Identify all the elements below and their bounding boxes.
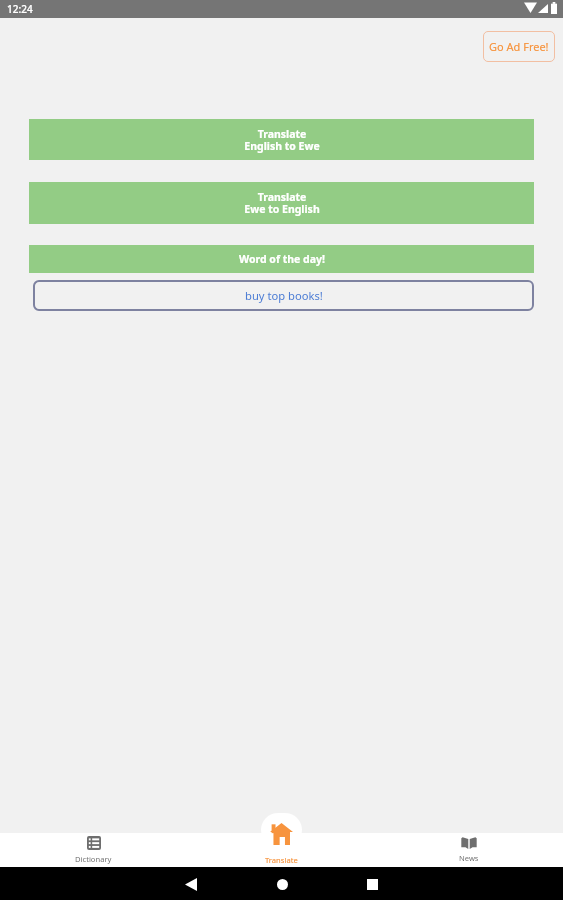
button[interactable]: News [375, 833, 563, 867]
staticText: Translate Ewe to English [244, 190, 320, 216]
staticText: 12:24 [7, 2, 33, 16]
button[interactable]: Back [176, 869, 206, 899]
staticText: News [459, 853, 479, 863]
button[interactable]: Home [267, 869, 297, 899]
button[interactable]: Recent apps [357, 869, 387, 899]
staticText: Go Ad Free! [489, 39, 549, 54]
button[interactable]: Dictionary [0, 833, 187, 867]
button[interactable]: Translate Ewe to English [29, 182, 534, 224]
button[interactable]: buy top books! [33, 280, 534, 311]
button[interactable]: Go Ad Free! [483, 31, 555, 62]
staticText: Dictionary [75, 854, 112, 864]
button[interactable]: Translate [261, 813, 302, 847]
staticText: buy top books! [245, 288, 323, 303]
staticText: Translate [265, 855, 298, 865]
button[interactable]: Word of the day! [29, 245, 534, 273]
staticText: Word of the day! [239, 252, 325, 266]
button[interactable]: Translate English to Ewe [29, 119, 534, 160]
button[interactable]: Translate [187, 833, 375, 867]
staticText: Translate English to Ewe [244, 127, 320, 153]
